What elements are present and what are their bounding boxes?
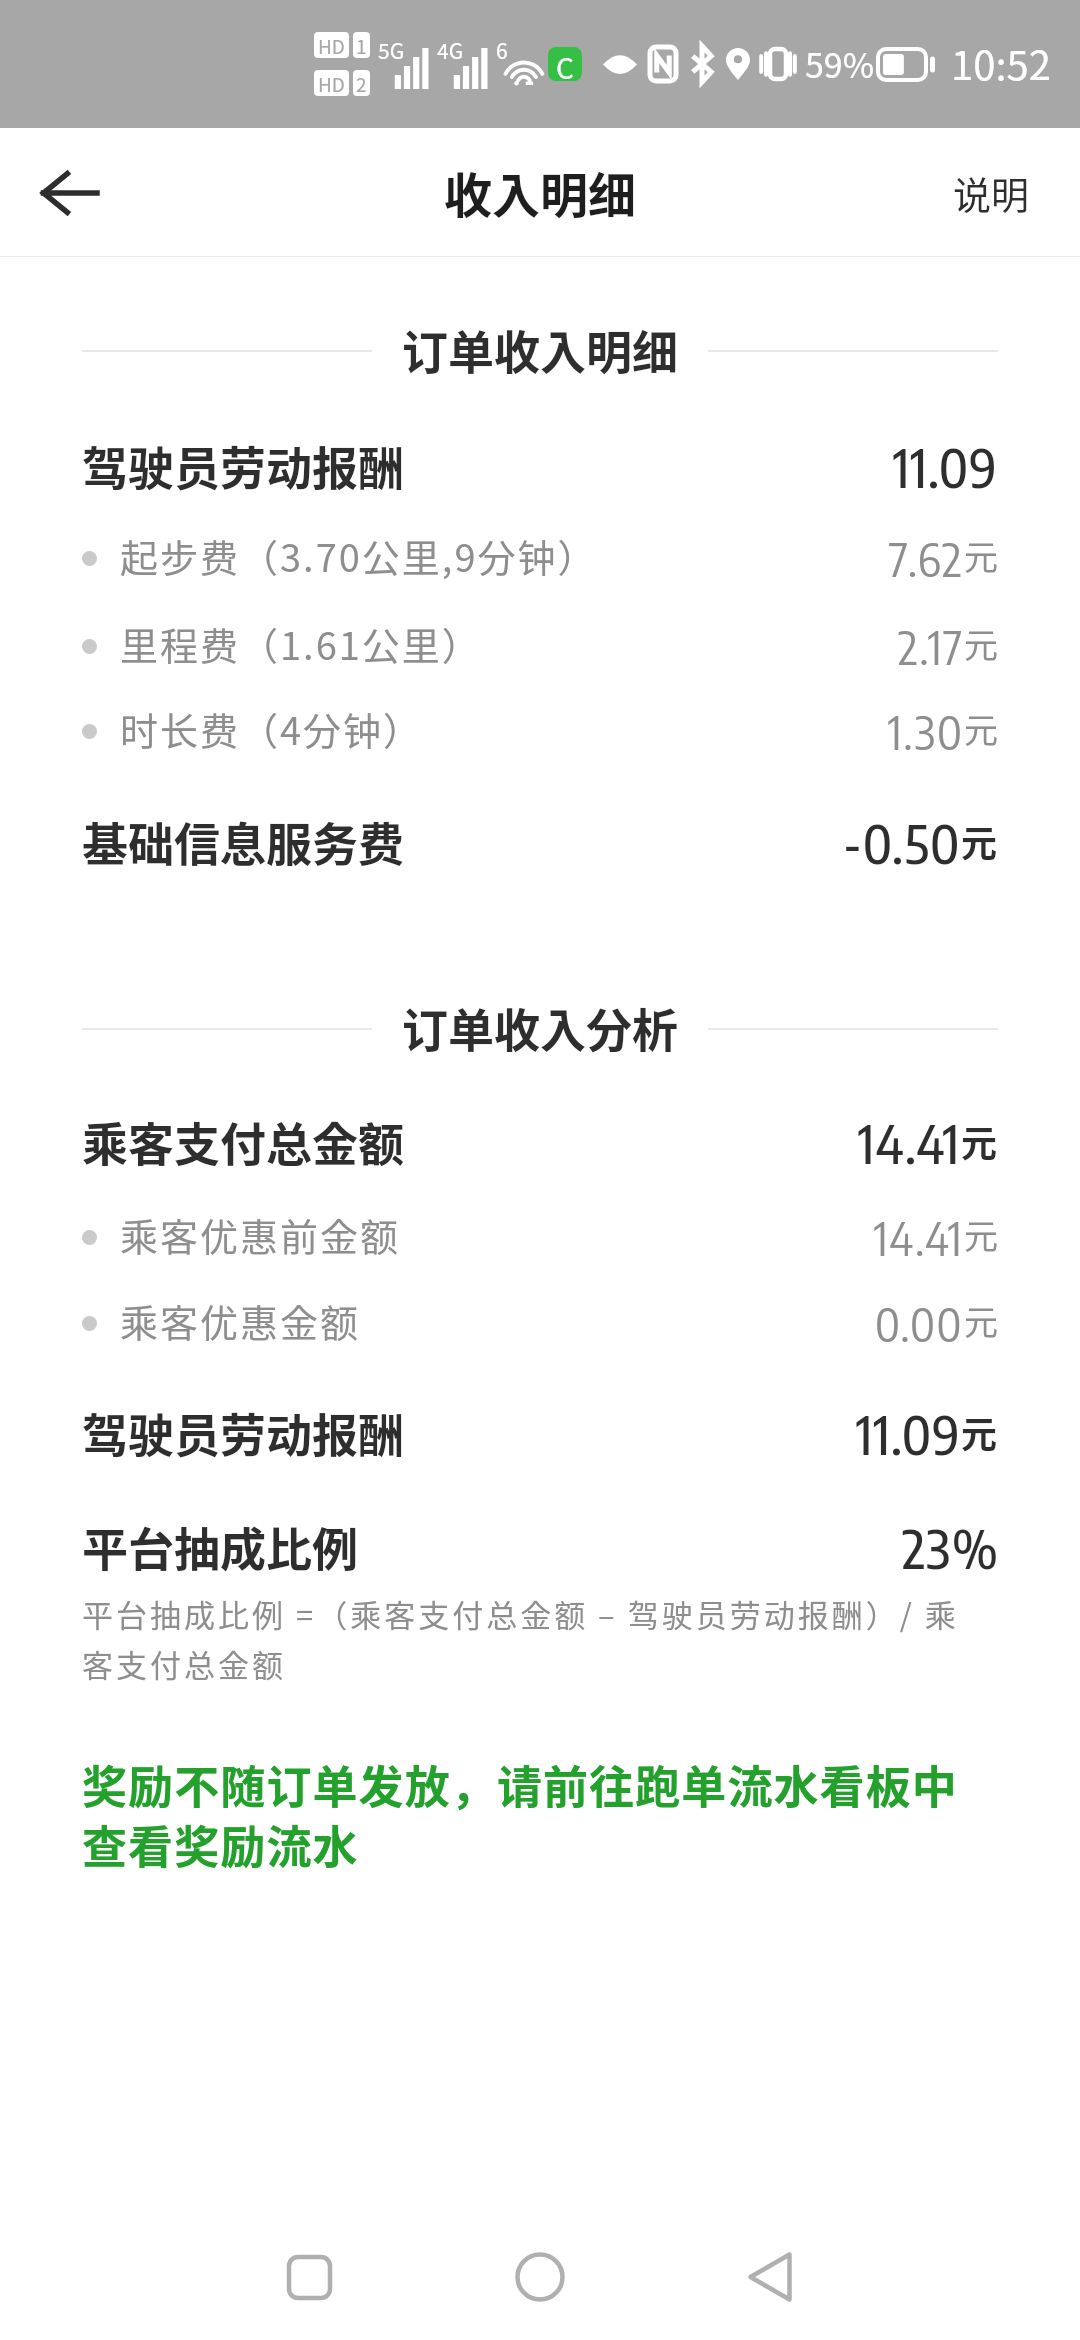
staticText: 元 <box>961 1406 998 1458</box>
staticText: 7.62 <box>889 530 964 587</box>
staticText: 乘客优惠前金额 <box>120 1207 401 1262</box>
staticText: 14.41 <box>874 1209 964 1266</box>
staticText: 23 <box>902 1514 952 1580</box>
staticText: 1 <box>356 32 367 58</box>
button[interactable]: Back <box>20 144 118 242</box>
staticText: 元 <box>964 704 998 753</box>
button[interactable]: 驾驶员劳动报酬 <box>0 429 1080 505</box>
staticText: 2.17 <box>898 618 964 675</box>
staticText: 订单收入明细 <box>402 316 678 376</box>
button[interactable]: 基础信息服务费 <box>0 805 1080 881</box>
staticText: 11.09 <box>856 1400 961 1466</box>
staticText: 4G <box>437 35 464 65</box>
button[interactable]: 驾驶员劳动报酬 <box>0 1396 1080 1472</box>
staticText: 5G <box>378 35 405 65</box>
button[interactable]: Recents <box>254 2222 364 2332</box>
staticText: 元 <box>964 1296 998 1345</box>
staticText: 起步费（3.70公里,9分钟） <box>120 528 598 583</box>
staticText: 时长费（4分钟） <box>120 701 424 756</box>
staticText: 平台抽成比例 <box>82 1513 358 1580</box>
staticText: 乘客优惠金额 <box>120 1293 361 1348</box>
staticText: 59% <box>805 39 875 88</box>
staticText: 平台抽成比例 =（乘客支付总金额 – 驾驶员劳动报酬）/ 乘客支付总金额 <box>82 1591 980 1686</box>
staticText: 6 <box>496 35 508 65</box>
staticText: 收入明细 <box>444 157 637 227</box>
staticText: 订单收入分析 <box>402 994 678 1054</box>
staticText: 元 <box>961 815 998 867</box>
staticText: 10:52 <box>951 34 1051 92</box>
staticText: 11.09 <box>893 433 998 499</box>
staticText: 元 <box>964 531 998 580</box>
staticText: 元 <box>961 1115 998 1167</box>
button[interactable]: 平台抽成比例 <box>0 1510 1080 1586</box>
staticText: -0.50 <box>843 809 961 875</box>
button[interactable]: 说明 <box>913 139 1080 246</box>
staticText: C <box>556 47 574 81</box>
staticText: 乘客支付总金额 <box>82 1108 404 1175</box>
staticText: 元 <box>964 619 998 668</box>
staticText: 基础信息服务费 <box>82 808 404 875</box>
staticText: 奖励不随订单发放，请前往跑单流水看板中查看奖励流水 <box>82 1752 972 1877</box>
staticText: 元 <box>964 1210 998 1259</box>
staticText: HD <box>318 70 345 96</box>
staticText: HD <box>318 32 345 58</box>
staticText: 2 <box>356 70 367 96</box>
staticText: 0.00 <box>875 1295 964 1352</box>
button[interactable]: Home <box>485 2222 595 2332</box>
staticText: 1.30 <box>888 703 964 760</box>
staticText: 说明 <box>953 165 1030 220</box>
staticText: 14.41 <box>858 1109 961 1175</box>
staticText: 驾驶员劳动报酬 <box>82 432 404 499</box>
button[interactable]: Back <box>715 2222 825 2332</box>
staticText: % <box>952 1514 998 1580</box>
button[interactable]: 乘客支付总金额 <box>0 1105 1080 1181</box>
staticText: 驾驶员劳动报酬 <box>82 1399 404 1466</box>
staticText: 里程费（1.61公里） <box>120 616 482 671</box>
